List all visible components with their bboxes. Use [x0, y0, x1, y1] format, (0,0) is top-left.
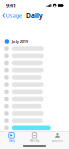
staticText: Usage: [6, 12, 22, 19]
button[interactable]: [0, 59, 69, 67]
button[interactable]: [0, 67, 69, 74]
button[interactable]: Weekly: [23, 132, 46, 143]
button[interactable]: [0, 74, 69, 81]
button[interactable]: [0, 45, 69, 52]
staticText: July 2019: [12, 39, 28, 44]
button[interactable]: Account: [46, 132, 69, 143]
button[interactable]: [0, 124, 69, 131]
button[interactable]: [0, 95, 69, 103]
staticText: Weekly: [30, 139, 39, 142]
staticText: 9:41: [6, 2, 16, 9]
button[interactable]: [0, 117, 69, 124]
staticText: Daily: [26, 11, 43, 20]
button[interactable]: Daily: [0, 132, 23, 143]
button[interactable]: [0, 88, 69, 95]
staticText: Account: [52, 139, 63, 142]
button[interactable]: [0, 110, 69, 117]
button[interactable]: [0, 103, 69, 110]
staticText: Daily: [8, 139, 14, 142]
button[interactable]: [0, 52, 69, 59]
button[interactable]: Usage: [0, 11, 24, 20]
button[interactable]: [0, 81, 69, 88]
